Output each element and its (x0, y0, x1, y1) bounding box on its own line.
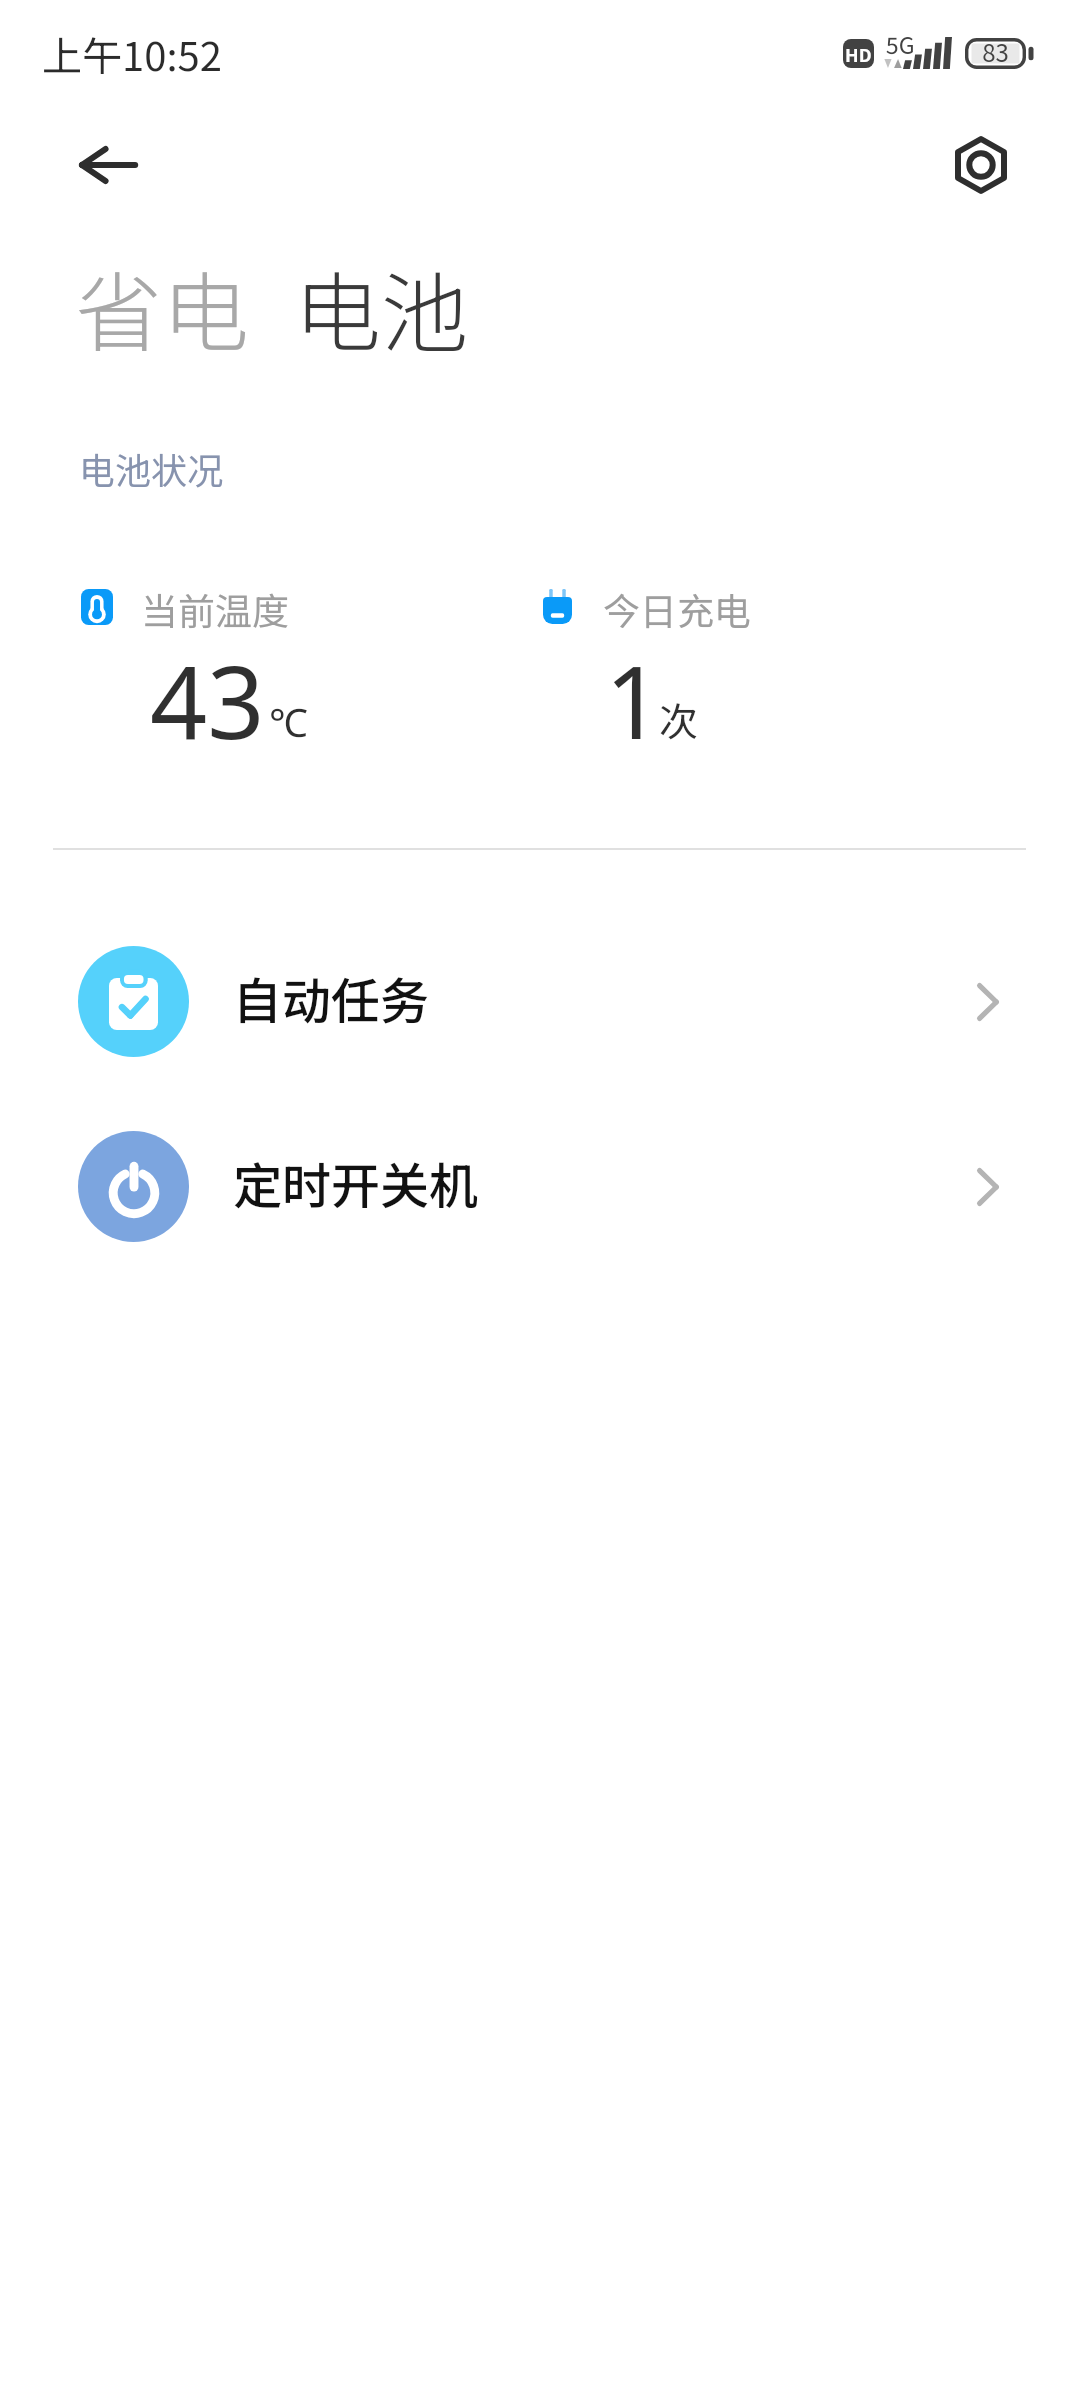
staticText: 43 (150, 632, 265, 768)
button[interactable]: 自动任务 (0, 909, 1080, 1093)
button[interactable]: 省电 (75, 244, 249, 370)
staticText: 次 (659, 691, 699, 747)
staticText: 当前温度 (141, 582, 289, 636)
staticText: 自动任务 (233, 962, 430, 1033)
staticText: 83 (965, 34, 1026, 65)
button[interactable]: 定时开关机 (0, 1094, 1080, 1278)
staticText: 1 (605, 632, 663, 768)
staticText: 5G (886, 27, 915, 60)
staticText: 今日充电 (603, 582, 751, 636)
button[interactable]: Back (58, 115, 158, 215)
button[interactable]: Settings (931, 115, 1031, 215)
button[interactable]: 电池 (294, 244, 468, 370)
staticText: 定时开关机 (233, 1147, 479, 1218)
staticText: 电池状况 (79, 442, 224, 494)
staticText: 上午10:52 (42, 25, 222, 83)
staticText: ℃ (269, 695, 308, 748)
staticText: HD (845, 41, 872, 67)
